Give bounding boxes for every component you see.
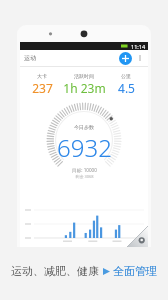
- button[interactable]: More options: [135, 53, 145, 63]
- staticText: 237: [32, 80, 53, 96]
- button[interactable]: 活跃时间: [60, 73, 108, 96]
- staticText: 11:14: [131, 43, 146, 50]
- staticText: 活跃时间: [74, 73, 94, 79]
- button[interactable]: [23, 207, 146, 245]
- staticText: 4.5: [118, 80, 135, 96]
- staticText: 全面管理: [113, 264, 157, 278]
- staticText: 今日步数: [74, 124, 94, 130]
- button[interactable]: Add activity: [119, 52, 132, 65]
- button[interactable]: 运动、减肥、健康: [11, 264, 157, 278]
- staticText: 大卡: [37, 73, 47, 79]
- staticText: 1h 23m: [63, 80, 106, 96]
- staticText: 目标: 10000: [72, 167, 97, 173]
- staticText: 剩余 3068: [75, 174, 94, 179]
- staticText: 6932: [57, 131, 112, 164]
- staticText: 运动、减肥、健康: [11, 264, 99, 278]
- staticText: 公里: [121, 73, 131, 79]
- button[interactable]: 大卡: [24, 73, 60, 96]
- button[interactable]: 公里: [108, 73, 144, 96]
- button[interactable]: 今日步数: [20, 102, 148, 180]
- staticText: 运动: [24, 54, 36, 62]
